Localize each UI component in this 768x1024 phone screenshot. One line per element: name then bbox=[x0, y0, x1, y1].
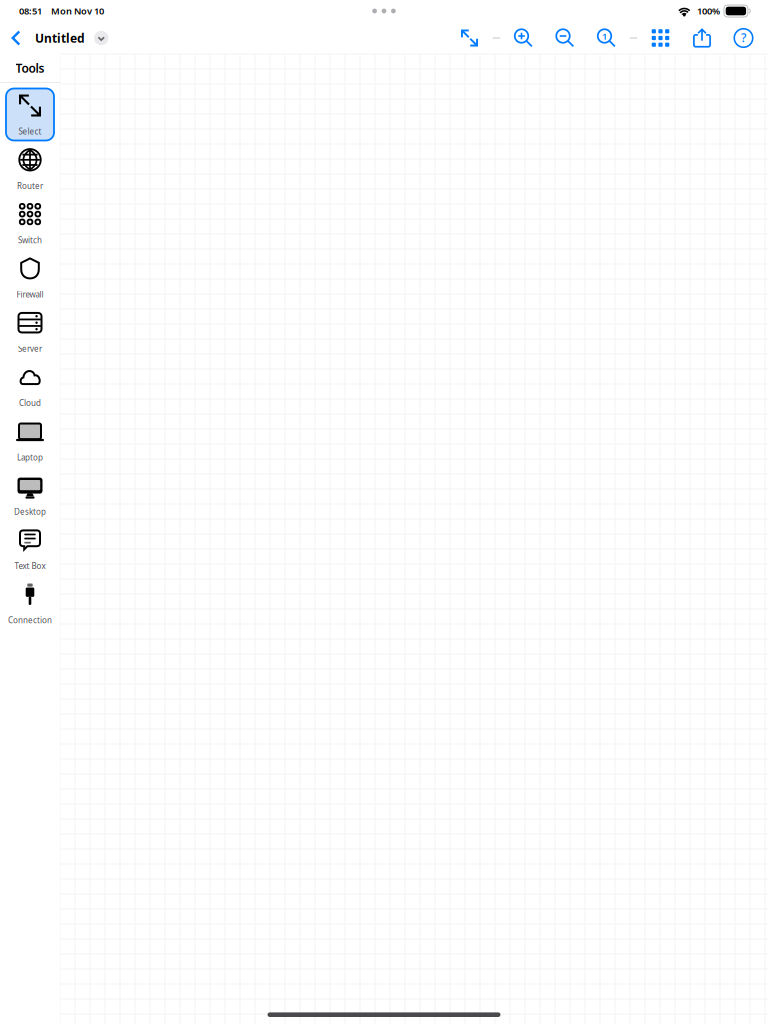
staticText: Untitled bbox=[35, 30, 85, 46]
staticText: Laptop bbox=[17, 452, 43, 463]
button[interactable]: Select bbox=[0, 88, 60, 140]
staticText: Firewall bbox=[16, 289, 43, 300]
staticText: Server bbox=[18, 343, 42, 354]
button[interactable]: Fit to screen bbox=[454, 22, 485, 53]
staticText: 08:51 bbox=[19, 5, 42, 17]
staticText: Select bbox=[18, 126, 41, 137]
button[interactable]: Back bbox=[4, 22, 28, 54]
button[interactable]: Connection bbox=[0, 577, 60, 629]
staticText: Desktop bbox=[14, 506, 46, 517]
staticText: Switch bbox=[18, 235, 42, 245]
button[interactable]: Actual size bbox=[591, 22, 622, 53]
button[interactable]: Cloud bbox=[0, 360, 60, 412]
button[interactable]: Untitled bbox=[35, 22, 108, 54]
staticText: Connection bbox=[8, 615, 52, 625]
staticText: 1 bbox=[602, 30, 607, 42]
staticText: Router bbox=[17, 180, 43, 191]
button[interactable]: Laptop bbox=[0, 414, 60, 466]
button[interactable]: Help bbox=[728, 22, 759, 53]
button[interactable]: Text Box bbox=[0, 523, 60, 575]
staticText: Mon Nov 10 bbox=[51, 5, 104, 17]
staticText: Cloud bbox=[19, 398, 41, 408]
button[interactable]: Router bbox=[0, 143, 60, 195]
button[interactable]: Toggle grid bbox=[645, 22, 676, 53]
staticText: ? bbox=[741, 30, 746, 45]
button[interactable]: Desktop bbox=[0, 469, 60, 521]
button[interactable]: Firewall bbox=[0, 251, 60, 303]
button[interactable]: Share bbox=[686, 22, 717, 53]
button[interactable]: Switch bbox=[0, 197, 60, 249]
staticText: Text Box bbox=[14, 561, 45, 571]
button[interactable]: Zoom out bbox=[549, 22, 580, 53]
staticText: 100% bbox=[697, 5, 720, 17]
button[interactable]: Zoom in bbox=[508, 22, 539, 53]
staticText: Tools bbox=[15, 60, 44, 76]
button[interactable]: Server bbox=[0, 306, 60, 358]
